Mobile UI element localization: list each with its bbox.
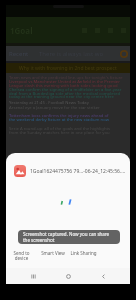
staticText: Recent [9, 50, 29, 58]
button[interactable]: Back [95, 268, 111, 284]
button[interactable]: Tool 2 [107, 27, 114, 34]
staticText: the weekend derby fixture at the new sta… [9, 117, 109, 123]
staticText: Serie A round-up: all of the goals and t… [9, 126, 111, 132]
button[interactable]: Recents [25, 268, 41, 284]
button[interactable]: Home [60, 268, 76, 284]
button[interactable]: Tool 0 [81, 27, 88, 34]
button[interactable]: Smart View [37, 250, 68, 264]
staticText: Tottenham boss confirms the injury news … [9, 113, 109, 119]
staticText: Screenshot captured. Now you can share [23, 231, 110, 237]
staticText: deal from a Bundesliga side after the me… [9, 91, 121, 97]
staticText: Chelsea confirm the signing of a midfiel… [9, 87, 122, 93]
staticText: Team news and the predicted line-ups for… [9, 75, 123, 81]
staticText: 1Goal [10, 25, 33, 36]
button[interactable]: Tool 3 [120, 27, 127, 34]
button[interactable]: 1Goal1624475756 79...-06-24_12:45:56.png [14, 165, 126, 177]
button[interactable]: Tool 1 [94, 27, 101, 34]
staticText: Why it with frowning in 2nd best prospec… [19, 65, 117, 72]
staticText: Liverpool vs Manchester United at Anfiel… [9, 79, 120, 85]
staticText: Yesterday at 21:45 - Football News Today [9, 100, 89, 106]
staticText: 1Goal1624475756 79...-06-24_12:45:56.png [30, 168, 126, 175]
staticText: the screenshot [23, 237, 55, 243]
staticText: Link Sharing [70, 250, 97, 256]
staticText: Send to device [13, 250, 30, 262]
button[interactable]: Browser [119, 49, 128, 58]
staticText: Smart View [41, 250, 65, 256]
button[interactable]: Send to device [6, 250, 37, 264]
staticText: today at the training ground near the ci… [9, 94, 114, 100]
staticText: League clash this evening with both side… [9, 83, 118, 89]
staticText: Arsenal eye a January move for the star … [9, 105, 100, 111]
staticText: from the Sunday matches here in one plac… [9, 130, 110, 136]
button[interactable]: Link Sharing [68, 250, 99, 264]
